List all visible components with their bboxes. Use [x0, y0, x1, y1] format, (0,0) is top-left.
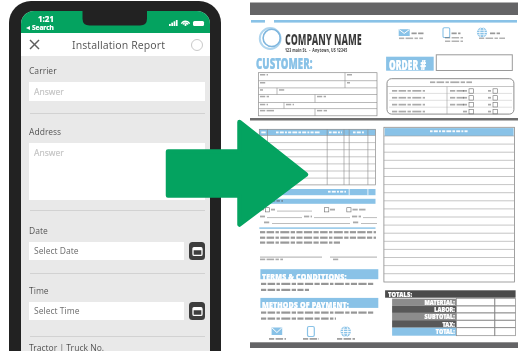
staticText: SUBTOTAL: [424, 312, 455, 321]
staticText: LABOR: [433, 305, 455, 314]
staticText: ORDER # [389, 55, 426, 74]
staticText: MATERIAL: [424, 298, 455, 307]
staticText: Answer [34, 86, 64, 98]
staticText: Select Time [34, 305, 80, 317]
staticText: Tractor | Truck No. [29, 342, 105, 351]
staticText: Date [29, 225, 48, 237]
button[interactable]: Answer [29, 82, 205, 101]
staticText: Carrier [29, 65, 57, 77]
staticText: Installation Report [72, 38, 166, 52]
staticText: CUSTOMER: [256, 53, 313, 73]
staticText: 123 main St. - Anytown, US 12345 [285, 46, 348, 54]
button[interactable]: Select Time [29, 302, 184, 320]
staticText: TAX: [442, 320, 455, 329]
staticText: Address [29, 126, 62, 138]
button[interactable]: Pick Date [189, 242, 205, 260]
staticText: COMPANY NAME [285, 28, 362, 49]
button[interactable]: Answer [29, 143, 205, 200]
button[interactable]: Profile [189, 37, 205, 53]
staticText: Search [32, 23, 54, 32]
staticText: METHODS OF PAYMENT: [262, 298, 349, 310]
staticText: Time [29, 285, 49, 297]
staticText: TOTAL: [435, 327, 455, 336]
button[interactable]: Pick Time [189, 302, 205, 320]
button[interactable]: Close [26, 36, 43, 53]
staticText: TERMS & CONDITIONS: [262, 270, 347, 282]
staticText: TOTALS: [388, 290, 413, 300]
staticText: Select Date [34, 245, 79, 257]
button[interactable]: Select Date [29, 242, 184, 260]
staticText: Answer [34, 147, 64, 159]
staticText: 1:21 [38, 13, 54, 24]
